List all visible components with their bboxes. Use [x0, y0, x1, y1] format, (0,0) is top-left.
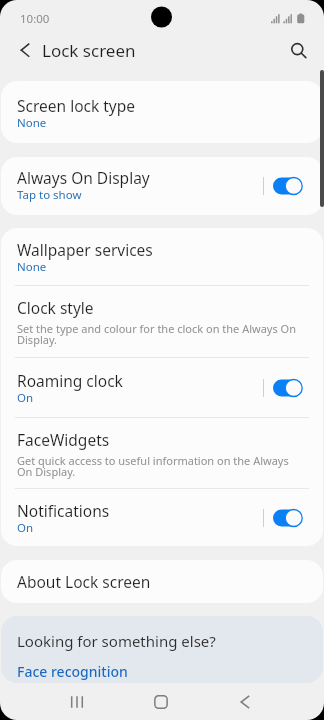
- button[interactable]: FaceWidgets: [1, 418, 323, 489]
- staticText: Roaming clock: [17, 370, 123, 391]
- staticText: Screen lock type: [17, 95, 136, 116]
- button[interactable]: Navigate up: [13, 34, 37, 67]
- button[interactable]: Recent apps: [58, 683, 96, 720]
- button[interactable]: Back: [226, 683, 264, 720]
- staticText: On: [17, 520, 34, 536]
- button[interactable]: Looking for something else?: [1, 616, 323, 683]
- staticText: None: [17, 115, 47, 131]
- button[interactable]: Toggle: [273, 175, 303, 197]
- button[interactable]: Home: [142, 683, 180, 720]
- button[interactable]: Always On Display: [1, 157, 323, 215]
- button[interactable]: Notifications: [1, 489, 323, 546]
- staticText: Wallpaper services: [17, 239, 153, 260]
- staticText: 10:00: [20, 11, 50, 27]
- staticText: On: [17, 390, 34, 406]
- button[interactable]: Wallpaper services: [1, 228, 323, 286]
- staticText: Looking for something else?: [17, 631, 216, 651]
- button[interactable]: Toggle: [273, 377, 303, 399]
- button[interactable]: Toggle: [273, 507, 303, 529]
- staticText: FaceWidgets: [17, 429, 110, 450]
- button[interactable]: About Lock screen: [1, 560, 323, 603]
- button[interactable]: Screen lock type: [1, 81, 323, 143]
- button[interactable]: Roaming clock: [1, 358, 323, 418]
- staticText: Face recognition: [17, 662, 128, 681]
- staticText: Tap to show: [17, 187, 82, 203]
- button[interactable]: Search: [286, 34, 312, 67]
- staticText: Set the type and colour for the clock on…: [17, 321, 303, 347]
- button[interactable]: Clock style: [1, 286, 323, 358]
- staticText: Always On Display: [17, 167, 150, 188]
- staticText: Clock style: [17, 297, 94, 318]
- staticText: Get quick access to useful information o…: [17, 453, 303, 479]
- staticText: Lock screen: [42, 39, 136, 62]
- staticText: None: [17, 259, 47, 275]
- staticText: Notifications: [17, 500, 110, 521]
- staticText: About Lock screen: [17, 571, 151, 592]
